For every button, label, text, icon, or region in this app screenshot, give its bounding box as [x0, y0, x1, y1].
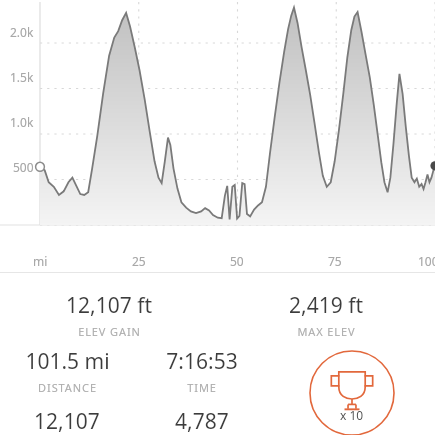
staticText: 75 — [328, 253, 342, 269]
button[interactable]: 2,419 ft — [289, 291, 363, 339]
staticText: mi — [33, 253, 48, 269]
staticText: x 10 — [340, 407, 364, 423]
staticText: 7:16:53 — [166, 347, 238, 376]
staticText: 1.0k — [10, 114, 34, 130]
staticText: 2.0k — [10, 24, 34, 40]
staticText: 12,107 — [34, 407, 100, 435]
staticText: 500 — [13, 159, 34, 175]
staticText: ELEV GAIN — [78, 324, 141, 339]
button[interactable]: 101.5 mi — [25, 347, 110, 395]
staticText: TIME — [187, 380, 217, 395]
staticText: 25 — [132, 253, 146, 269]
staticText: 50 — [230, 253, 244, 269]
staticText: 1.5k — [10, 69, 34, 85]
button[interactable]: Achievements, 10 trophies — [308, 349, 396, 435]
button[interactable]: 12,107 ft — [66, 291, 152, 339]
staticText: 12,107 ft — [66, 291, 152, 320]
staticText: 4,787 — [175, 407, 229, 435]
button[interactable]: 7:16:53 — [166, 347, 238, 395]
staticText: MAX ELEV — [297, 324, 356, 339]
staticText: 100 — [418, 253, 435, 269]
staticText: 101.5 mi — [25, 347, 110, 376]
staticText: DISTANCE — [38, 380, 97, 395]
staticText: 2,419 ft — [289, 291, 363, 320]
